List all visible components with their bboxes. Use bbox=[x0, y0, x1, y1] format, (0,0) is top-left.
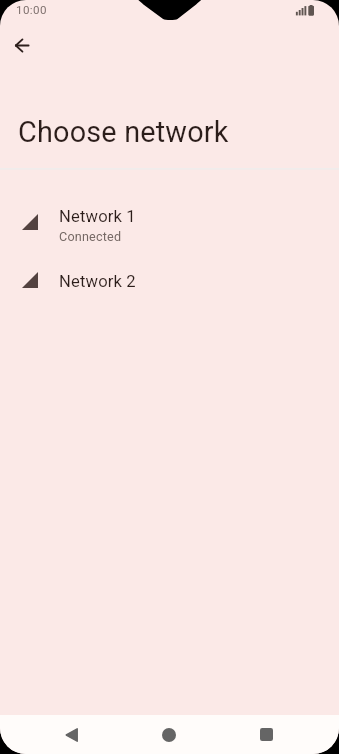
staticText: 10:00 bbox=[16, 3, 47, 17]
staticText: Choose network bbox=[18, 115, 229, 149]
staticText: Connected bbox=[59, 229, 122, 244]
staticText: Network 1 bbox=[59, 207, 136, 226]
staticText: Network 2 bbox=[59, 272, 136, 291]
button[interactable]: Back bbox=[4, 27, 40, 63]
button[interactable]: Back bbox=[49, 715, 93, 754]
button[interactable]: Recents bbox=[244, 715, 288, 754]
button[interactable]: Network 2 bbox=[0, 256, 339, 304]
button[interactable]: Network 1 bbox=[0, 196, 339, 252]
button[interactable]: Home bbox=[147, 715, 191, 754]
